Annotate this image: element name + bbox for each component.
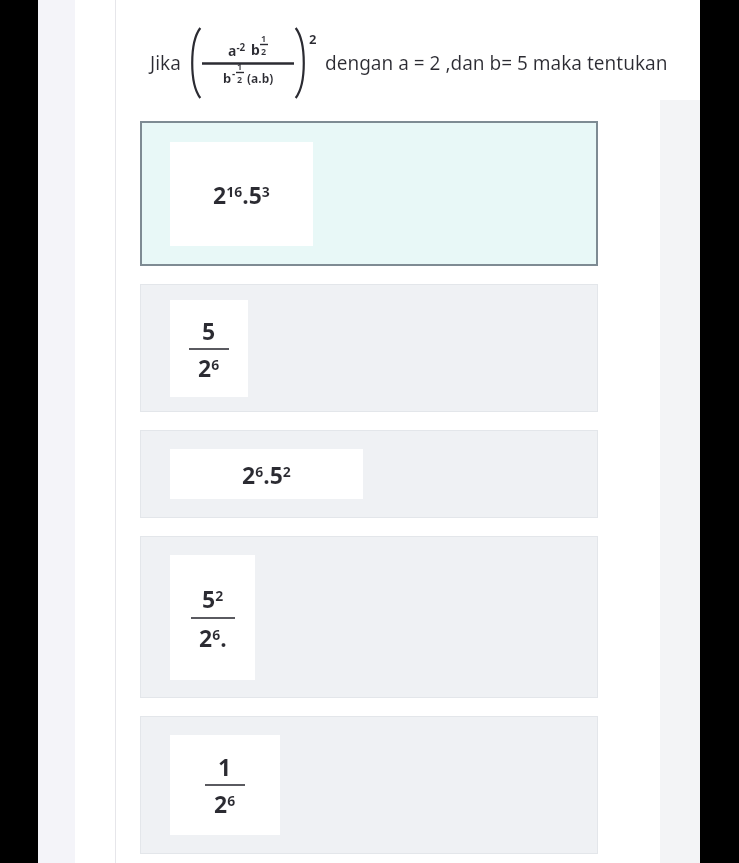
staticText: 52 — [202, 583, 224, 614]
staticText: Jika — [150, 50, 181, 76]
staticText: 26.52 — [242, 459, 291, 490]
staticText: a-2 — [228, 40, 246, 60]
staticText: b — [251, 40, 260, 59]
staticText: 1 — [237, 60, 243, 72]
staticText: 216.53 — [213, 179, 270, 210]
staticText: dengan a = 2 ,dan b= 5 maka tentukan — [325, 50, 668, 76]
button[interactable]: Option 1 over 2^6 — [140, 716, 598, 854]
staticText: 26 — [198, 352, 220, 383]
staticText: (a.b) — [247, 70, 274, 86]
staticText: 5 — [202, 315, 216, 346]
staticText: 2 — [261, 45, 267, 57]
staticText: - — [232, 66, 236, 80]
staticText: 2 — [237, 73, 243, 85]
staticText: b — [223, 69, 232, 87]
staticText: 1 — [218, 751, 232, 782]
staticText: 26. — [199, 622, 227, 653]
staticText: 2 — [309, 30, 317, 48]
staticText: 1 — [261, 32, 267, 44]
button[interactable]: Option 5 over 2^6 — [140, 284, 598, 412]
staticText: 26 — [214, 788, 236, 819]
button[interactable]: Option 2^16 . 5^3 — [140, 121, 598, 266]
button[interactable]: Option 2^6 . 5^2 — [140, 430, 598, 518]
button[interactable]: Option 5^2 over 2^6 — [140, 536, 598, 698]
